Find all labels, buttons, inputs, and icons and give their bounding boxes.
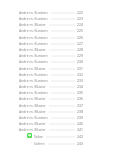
staticText: Andre m. Muster	[19, 127, 46, 132]
staticText: 225	[77, 28, 83, 33]
staticText: 242	[77, 134, 83, 139]
staticText: 224	[77, 22, 83, 27]
staticText: 240	[77, 121, 83, 126]
button[interactable]: Andre m. Kuntzen	[19, 59, 83, 64]
staticText: Andre m. Muster	[19, 22, 46, 27]
button[interactable]: Andre m. Kuntzen	[19, 90, 83, 95]
staticText: Value	[34, 134, 43, 139]
button[interactable]: Andre m. Kuntzen	[19, 28, 83, 33]
button[interactable]: Andre m. Muster	[19, 109, 83, 114]
button[interactable]: Andre m. Muster	[19, 103, 83, 108]
staticText: 222	[77, 10, 83, 15]
staticText: Andre m. Kuntzen	[19, 59, 48, 64]
staticText: Andre m. Muster	[19, 103, 46, 108]
staticText: Andre m. Kuntzen	[19, 10, 48, 15]
staticText: Andre m. Kuntzen	[19, 41, 48, 46]
staticText: Andre m. Kuntzen	[19, 28, 48, 33]
button[interactable]: Andre m. Kuntzen	[19, 53, 83, 58]
staticText: 232	[77, 72, 83, 77]
button[interactable]: Andre m. Kuntzen	[19, 72, 83, 77]
staticText: 226	[77, 35, 83, 40]
staticText: Andre m. Kuntzen	[19, 16, 48, 21]
button[interactable]: Andre m. Kuntzen	[19, 78, 83, 83]
staticText: 223	[77, 16, 83, 21]
button[interactable]: Andre m. Kuntzen	[19, 10, 83, 15]
button[interactable]: Andre m. Muster	[19, 47, 83, 52]
staticText: Andre m. Muster	[19, 66, 46, 71]
staticText: Andre m. Kuntzen	[19, 35, 48, 40]
button[interactable]: Andre m. Muster	[19, 127, 83, 132]
button[interactable]: Andre m. Kuntzen	[19, 16, 83, 21]
button[interactable]: Andre m. Kuntzen	[19, 35, 83, 40]
staticText: 230	[77, 59, 83, 64]
staticText: 236	[77, 96, 83, 101]
staticText: Andre m. Kuntzen	[19, 90, 48, 95]
staticText: 231	[77, 66, 83, 71]
staticText: 234	[77, 84, 83, 89]
button[interactable]: Andre m. Muster	[19, 66, 83, 71]
other: Open chat	[27, 133, 32, 138]
staticText: Andre m. Kuntzen	[19, 72, 48, 77]
staticText: Andre m. Muster	[19, 47, 46, 52]
staticText: Sofern	[34, 141, 45, 146]
staticText: Andre m. Kuntzen	[19, 115, 48, 120]
button[interactable]: Andre m. Muster	[19, 96, 83, 101]
staticText: 238	[77, 109, 83, 114]
button[interactable]: Open chat	[19, 134, 83, 139]
staticText: 228	[77, 47, 83, 52]
staticText: Andre m. Kuntzen	[19, 53, 48, 58]
staticText: 243	[77, 141, 83, 146]
staticText: 227	[77, 41, 83, 46]
staticText: 239	[77, 115, 83, 120]
staticText: Andre m. Muster	[19, 84, 46, 89]
staticText: 229	[77, 53, 83, 58]
button[interactable]: Andre m. Muster	[19, 22, 83, 27]
staticText: Andre m. Muster	[19, 109, 46, 114]
button[interactable]: Andre m. Kuntzen	[19, 115, 83, 120]
staticText: Andre m. Kuntzen	[19, 78, 48, 83]
staticText: 241	[77, 127, 83, 132]
button[interactable]: Sofern	[19, 141, 83, 146]
staticText: 235	[77, 90, 83, 95]
button[interactable]: Andre m. Muster	[19, 84, 83, 89]
staticText: Andre m. Muster	[19, 121, 46, 126]
button[interactable]: Andre m. Kuntzen	[19, 41, 83, 46]
button[interactable]: Andre m. Muster	[19, 121, 83, 126]
staticText: 233	[77, 78, 83, 83]
staticText: Andre m. Muster	[19, 96, 46, 101]
staticText: 237	[77, 103, 83, 108]
